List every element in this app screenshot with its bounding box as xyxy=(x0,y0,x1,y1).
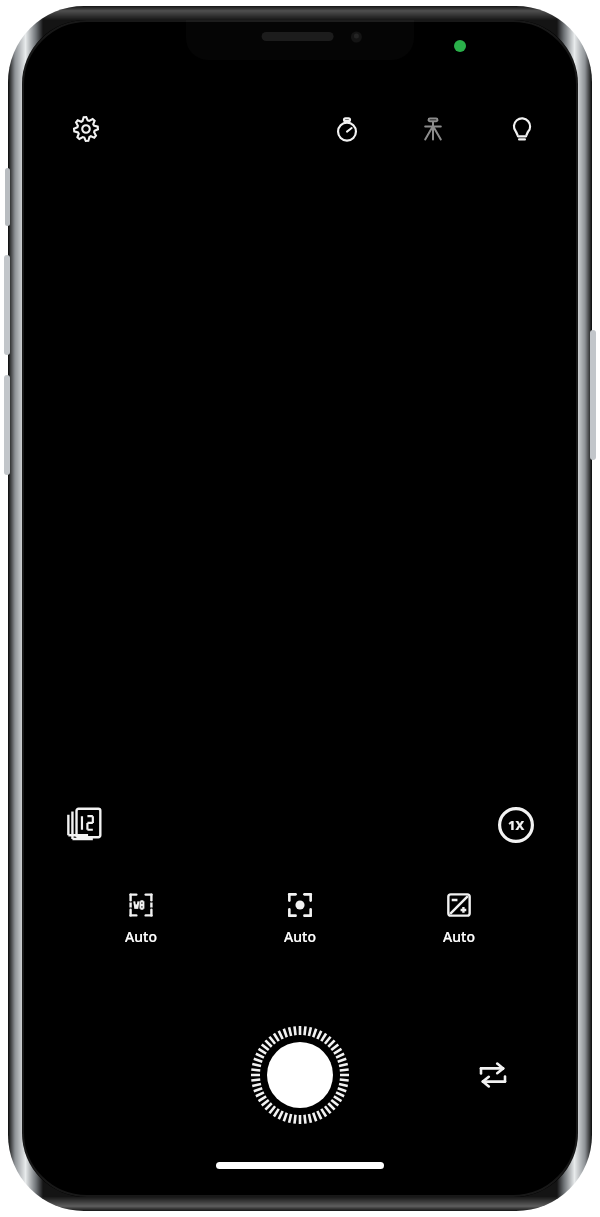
staticText: Auto xyxy=(125,927,157,946)
button[interactable]: Settings xyxy=(64,107,108,151)
other: Volume up xyxy=(4,255,10,355)
button[interactable]: Shutter xyxy=(249,1024,351,1126)
other: Mute switch xyxy=(5,168,10,226)
button[interactable]: Timer xyxy=(325,107,369,151)
button[interactable]: Tripod xyxy=(411,107,455,151)
staticText: Auto xyxy=(284,927,316,946)
staticText: Auto xyxy=(443,927,475,946)
other: Volume down xyxy=(4,375,10,475)
button[interactable]: Zoom 1X xyxy=(489,798,543,852)
button[interactable]: Switch camera xyxy=(466,1048,520,1102)
button[interactable]: Exposure xyxy=(422,892,496,946)
staticText: 1X xyxy=(508,816,525,834)
button[interactable]: Burst 12 xyxy=(57,798,111,852)
button[interactable]: Metering xyxy=(263,892,337,946)
button[interactable]: White balance xyxy=(104,892,178,946)
other: Power xyxy=(590,330,596,460)
button[interactable]: Flash xyxy=(500,107,544,151)
